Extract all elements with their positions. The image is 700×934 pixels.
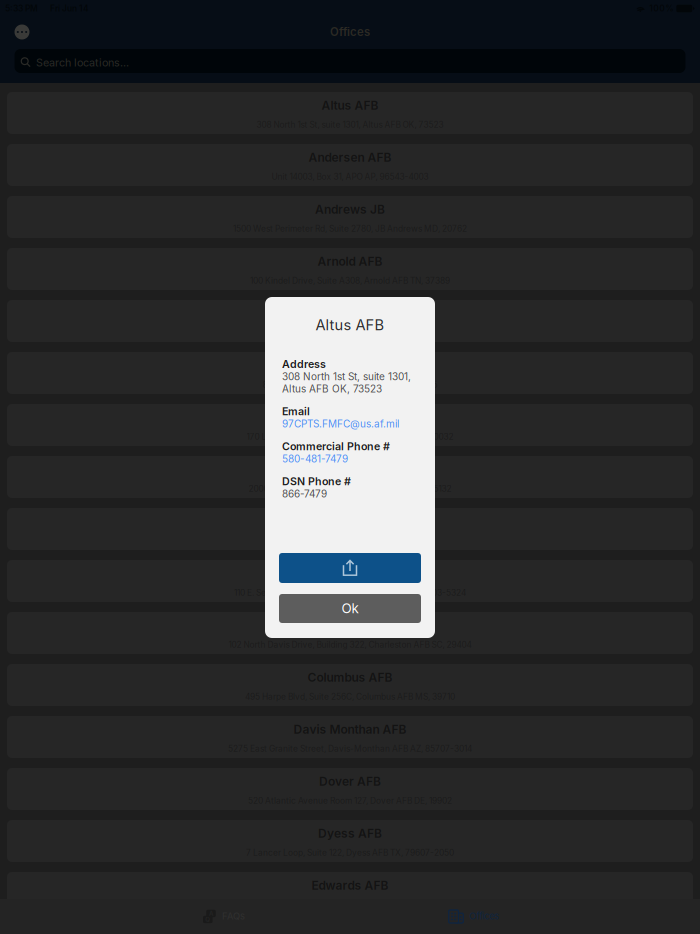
staticText: Bolling AFB [317,410,383,424]
staticText: Altus AFB [315,316,384,334]
staticText: Altus AFB [321,98,378,112]
button[interactable]: Beale AFB [7,352,693,394]
staticText: Commercial Phone # [282,440,390,453]
staticText: Barksdale AFB [307,306,392,320]
staticText: Offices [330,25,370,39]
button[interactable]: Cannon AFB [7,560,693,602]
button[interactable]: Buckley AFB [7,508,693,550]
staticText: Fri Jun 14 [50,3,89,14]
staticText: Dyess AFB [318,826,382,840]
button[interactable]: Brooks City Base [7,456,693,498]
staticText: Offices [469,910,499,922]
staticText: Search locations... [36,56,129,69]
button[interactable]: Share [279,553,421,583]
staticText: Cannon AFB [314,566,385,580]
staticText: Beale AFB [320,358,379,372]
staticText: Email [282,405,310,418]
staticText: Davis Monthan AFB [293,722,406,736]
button[interactable]: Search locations... [14,49,685,73]
staticText: FAQs [222,910,245,922]
staticText: 97CPTS.FMFC@us.af.mil [282,418,399,430]
staticText: 2000 Connell Ave, Brooks City Base TX, 7… [248,483,451,494]
staticText: Address [282,358,326,371]
staticText: Charleston AFB [305,618,395,632]
staticText: Brooks City Base [300,462,399,476]
button[interactable]: Ok [279,594,421,623]
staticText: Andrews JB [315,202,385,216]
staticText: Columbus AFB [307,670,392,684]
staticText: 866-7479 [282,488,327,500]
staticText: Ok [341,600,358,616]
staticText: 580-481-7479 [282,453,348,465]
staticText: 110 E. Sextant Ave, Suite 1180, Cannon A… [234,587,466,598]
staticText: 801 Kenney Way, Beale AFB CA, 95903-2045 [262,379,437,390]
staticText: Arnold AFB [317,254,382,268]
staticText: DSN Phone # [282,475,351,488]
staticText: Andersen AFB [308,150,391,164]
staticText: 170 Luke Ave, Building 5683, JB Anacosti… [246,431,453,442]
staticText: Dover AFB [319,774,381,788]
staticText: 100% [649,3,673,14]
staticText: Q [205,916,210,923]
staticText: 5:33 PM [5,3,38,14]
staticText: Altus AFB OK, 73523 [282,383,382,395]
button[interactable]: Bolling AFB [7,404,693,446]
button[interactable]: Charleston AFB [7,612,693,654]
button[interactable]: Offices [380,899,568,934]
staticText: Edwards AFB [311,878,388,892]
button[interactable]: More options [7,20,37,44]
button[interactable]: Barksdale AFB [7,300,693,342]
staticText: 308 North 1st St, suite 1301, [282,371,411,383]
staticText: 841 Fairchild Ave, Barksdale AFB LA, 711… [268,327,431,338]
